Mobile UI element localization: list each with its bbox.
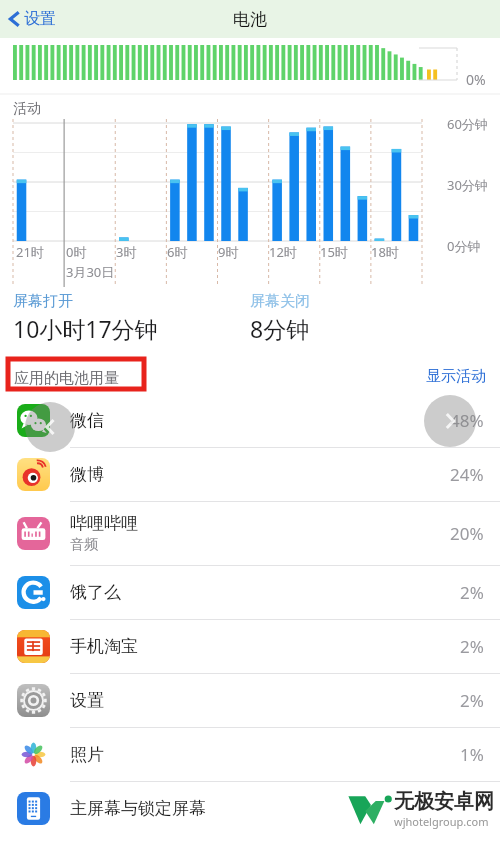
button[interactable]: 设置 bbox=[0, 674, 500, 727]
button[interactable]: Previous bbox=[25, 402, 75, 452]
staticText: 30分钟 bbox=[447, 176, 488, 194]
staticText: 设置 bbox=[70, 690, 104, 711]
staticText: 音频 bbox=[70, 536, 98, 554]
staticText: 0% bbox=[466, 70, 486, 89]
staticText: 48% bbox=[450, 409, 484, 432]
staticText: 屏幕打开 bbox=[13, 292, 73, 311]
staticText: 1% bbox=[460, 743, 484, 766]
button[interactable]: Next bbox=[424, 395, 476, 447]
button[interactable]: 主屏幕与锁定屏幕 bbox=[0, 782, 500, 835]
button[interactable]: 照片 bbox=[0, 728, 500, 781]
staticText: 0分钟 bbox=[447, 237, 481, 255]
staticText: 9时 bbox=[218, 243, 239, 261]
button[interactable]: 饿了么 bbox=[0, 566, 500, 619]
button[interactable]: 设置 bbox=[0, 5, 66, 33]
staticText: 屏幕关闭 bbox=[250, 292, 310, 311]
staticText: 设置 bbox=[24, 9, 56, 29]
staticText: 0时 bbox=[66, 243, 87, 261]
staticText: 21时 bbox=[16, 243, 44, 261]
staticText: 15时 bbox=[320, 243, 348, 261]
staticText: 2% bbox=[460, 635, 484, 658]
staticText: wjhotelgroup.com bbox=[394, 814, 489, 829]
button[interactable]: 手机淘宝 bbox=[0, 620, 500, 673]
staticText: 活动 bbox=[13, 100, 41, 118]
staticText: 3时 bbox=[116, 243, 137, 261]
staticText: 12时 bbox=[269, 243, 297, 261]
button[interactable]: 微信 bbox=[0, 394, 500, 447]
staticText: 10小时17分钟 bbox=[13, 313, 158, 344]
staticText: 3月30日 bbox=[66, 263, 115, 281]
staticText: 电池 bbox=[233, 9, 267, 30]
staticText: 显示活动 bbox=[426, 367, 486, 386]
button[interactable]: 哔哩哔哩 bbox=[0, 502, 500, 565]
staticText: 微博 bbox=[70, 464, 104, 485]
staticText: 主屏幕与锁定屏幕 bbox=[70, 798, 206, 819]
staticText: 手机淘宝 bbox=[70, 636, 138, 657]
staticText: 60分钟 bbox=[447, 115, 488, 133]
button[interactable]: 微博 bbox=[0, 448, 500, 501]
staticText: 8分钟 bbox=[250, 313, 310, 344]
staticText: 18时 bbox=[371, 243, 399, 261]
staticText: 6时 bbox=[167, 243, 188, 261]
staticText: 无极安卓网 bbox=[394, 789, 494, 814]
staticText: 24% bbox=[450, 463, 484, 486]
button[interactable]: 显示活动 bbox=[414, 361, 500, 392]
staticText: 哔哩哔哩 bbox=[70, 513, 138, 534]
staticText: 20% bbox=[450, 522, 484, 545]
staticText: 饿了么 bbox=[70, 582, 121, 603]
staticText: 应用的电池用量 bbox=[14, 369, 119, 388]
staticText: 2% bbox=[460, 689, 484, 712]
staticText: 2% bbox=[460, 581, 484, 604]
staticText: 微信 bbox=[70, 410, 104, 431]
staticText: 照片 bbox=[70, 744, 104, 765]
